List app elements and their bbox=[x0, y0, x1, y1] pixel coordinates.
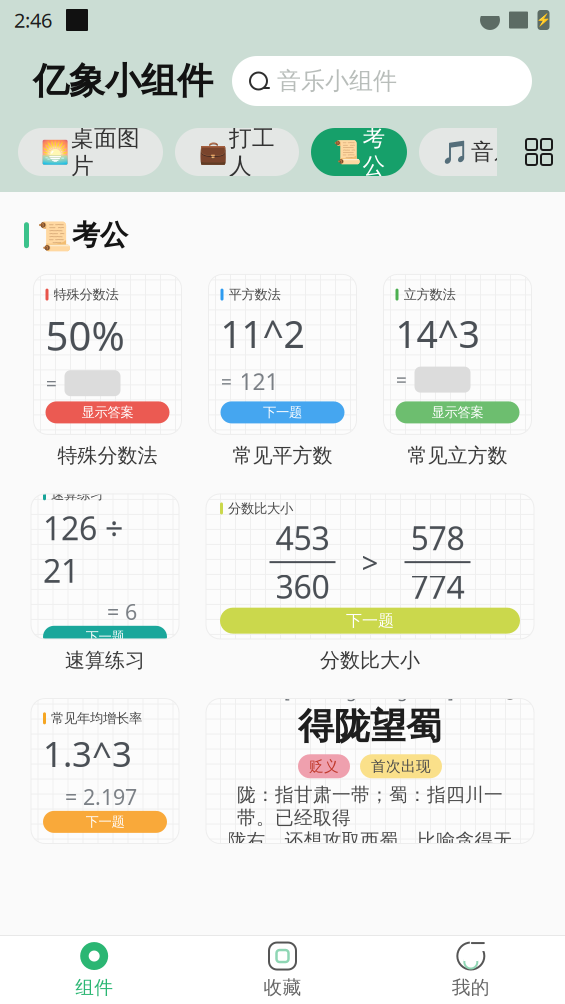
staticText: 📜考公 bbox=[37, 218, 128, 252]
staticText: 考公 bbox=[362, 124, 385, 180]
staticText: ⚡ bbox=[536, 13, 551, 27]
staticText: 平方数法 bbox=[228, 286, 280, 303]
button[interactable]: 🎵 bbox=[419, 128, 539, 176]
button[interactable]: All categories bbox=[513, 128, 565, 176]
staticText: 特殊分数法 bbox=[57, 443, 157, 468]
staticText: 速算练习 bbox=[65, 648, 145, 673]
button[interactable]: 收藏 bbox=[188, 936, 377, 1004]
staticText: 50% bbox=[45, 309, 124, 362]
staticText: 常见平方数 bbox=[232, 443, 332, 468]
staticText: 常见立方数 bbox=[407, 443, 507, 468]
button[interactable]: [ dé lǒng wàng shǔ ] bbox=[206, 698, 534, 843]
button[interactable]: 音乐小组件 bbox=[232, 56, 532, 106]
button[interactable]: 下一题 bbox=[43, 626, 167, 648]
staticText: 下一题 bbox=[85, 814, 124, 830]
staticText: 显示答案 bbox=[81, 404, 133, 421]
staticText: 贬义 bbox=[309, 757, 339, 775]
button[interactable]: 显示答案 bbox=[45, 401, 169, 423]
staticText: 速算练习 bbox=[51, 486, 103, 502]
staticText: 桌面图片 bbox=[71, 124, 140, 180]
staticText: 分数比大小 bbox=[320, 648, 420, 673]
button[interactable]: 平方数法 bbox=[208, 274, 356, 434]
staticText: 下一题 bbox=[263, 404, 302, 421]
button[interactable]: 显示答案 bbox=[395, 401, 519, 423]
button[interactable]: 分数比大小 bbox=[206, 494, 534, 639]
staticText: 首次出现 bbox=[371, 757, 431, 775]
button[interactable]: 🌅 bbox=[18, 128, 163, 176]
staticText: 常见年均增长率 bbox=[51, 710, 142, 727]
button[interactable]: 下一题 bbox=[220, 608, 520, 634]
button[interactable]: 特殊分数法 bbox=[33, 274, 181, 434]
staticText: 11^2 bbox=[220, 309, 304, 358]
staticText: 音乐小组件 bbox=[277, 66, 397, 96]
staticText: = bbox=[220, 368, 231, 395]
staticText: 下一题 bbox=[346, 611, 394, 630]
staticText: 🎵 bbox=[441, 139, 469, 165]
staticText: 收藏 bbox=[263, 976, 301, 999]
button[interactable]: 下一题 bbox=[43, 811, 167, 833]
staticText: 14^3 bbox=[395, 309, 479, 358]
staticText: 126 ÷ 21 bbox=[43, 506, 123, 591]
staticText: 打工人 bbox=[229, 124, 275, 180]
staticText: 📜 bbox=[332, 139, 360, 165]
staticText: 陇：指甘肃一带；蜀：指四川一带。已经取得 bbox=[237, 783, 503, 829]
staticText: 1.3^3 bbox=[43, 730, 132, 776]
staticText: 121 bbox=[239, 366, 278, 396]
staticText: 立方数法 bbox=[403, 286, 455, 303]
staticText: 我的 bbox=[452, 976, 490, 999]
staticText: 显示答案 bbox=[431, 404, 483, 421]
staticText: 774 bbox=[410, 565, 464, 608]
staticText: 2:46 bbox=[14, 7, 52, 33]
staticText: 音乐 bbox=[471, 138, 517, 166]
staticText: 组件 bbox=[75, 976, 113, 999]
staticText: 下一题 bbox=[85, 629, 124, 645]
staticText: = bbox=[395, 366, 406, 393]
staticText: 453 bbox=[275, 517, 329, 559]
staticText: 578 bbox=[410, 517, 464, 559]
button[interactable]: 💼 bbox=[175, 128, 299, 176]
staticText: 得陇望蜀 bbox=[298, 704, 442, 748]
staticText: > bbox=[361, 543, 378, 582]
button[interactable]: 下一题 bbox=[220, 401, 344, 423]
button[interactable]: 速算练习 bbox=[31, 494, 179, 639]
button[interactable]: 📜 bbox=[311, 128, 407, 176]
staticText: [ dé lǒng wàng shǔ ] bbox=[284, 679, 454, 702]
staticText: = bbox=[45, 370, 56, 396]
staticText: 特殊分数法 bbox=[53, 286, 118, 303]
staticText: = 2.197 bbox=[65, 783, 137, 811]
button[interactable]: 我的 bbox=[377, 936, 565, 1004]
staticText: 🌅 bbox=[41, 139, 69, 165]
staticText: 360 bbox=[275, 565, 329, 608]
button[interactable]: 常见年均增长率 bbox=[31, 698, 179, 843]
staticText: 亿象小组件 bbox=[33, 59, 213, 103]
staticText: 💼 bbox=[199, 139, 227, 165]
button[interactable]: 组件 bbox=[0, 936, 188, 1004]
staticText: = 6 bbox=[107, 597, 137, 626]
staticText: 分数比大小 bbox=[228, 500, 293, 517]
staticText: 陇右，还想攻取西蜀。比喻贪得无厌。 bbox=[227, 829, 512, 875]
button[interactable]: 立方数法 bbox=[383, 274, 531, 434]
